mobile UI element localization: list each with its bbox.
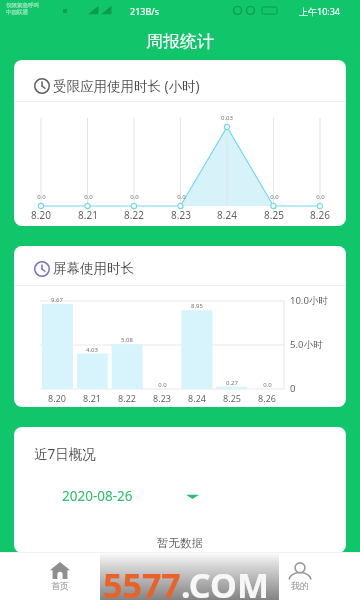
staticText: 5.0小时 (290, 338, 323, 351)
staticText: 0.0 (37, 193, 46, 201)
staticText: 0.0 (316, 193, 325, 201)
staticText: 8.23 (171, 208, 191, 222)
staticText: 8.24 (188, 392, 206, 404)
staticText: 8.26 (258, 392, 276, 404)
staticText: 8.21 (83, 392, 101, 404)
staticText: 受限应用使用时长 (小时) (53, 77, 200, 95)
staticText: 9.67 (51, 296, 63, 304)
staticText: 2020-08-26 (62, 487, 133, 505)
staticText: 0 (290, 382, 296, 395)
button[interactable]: Profile (240, 553, 360, 600)
staticText: 0.27 (226, 379, 238, 387)
staticText: 8.95 (191, 302, 203, 310)
staticText: 0.0 (84, 193, 93, 201)
staticText: 上午10:34 (299, 5, 341, 17)
staticText: 8.26 (310, 208, 330, 222)
staticText: 8.21 (78, 208, 98, 222)
staticText: 8.22 (124, 208, 144, 222)
staticText: 0.0 (130, 193, 139, 201)
button[interactable]: Statistics (120, 553, 240, 600)
staticText: 8.22 (118, 392, 136, 404)
staticText: 中国联通 (6, 9, 28, 16)
staticText: 0.0 (158, 381, 167, 389)
staticText: 0.03 (221, 114, 233, 122)
staticText: 统计 (171, 581, 189, 592)
staticText: 10.0小时 (290, 294, 328, 307)
staticText: 暂无数据 (14, 536, 346, 550)
staticText: 近7日概况 (34, 445, 96, 463)
staticText: 0.0 (263, 381, 272, 389)
button[interactable]: 2020-08-26 (62, 485, 222, 507)
staticText: 0.0 (270, 193, 279, 201)
staticText: 屏幕使用时长 (53, 260, 134, 277)
staticText: 8.24 (217, 208, 237, 222)
staticText: 8.25 (264, 208, 284, 222)
staticText: 213B/s (130, 5, 159, 17)
staticText: 我的 (291, 580, 309, 591)
staticText: 仅限紧急呼叫 (6, 2, 39, 9)
staticText: 周报统计 (146, 31, 214, 52)
staticText: 首页 (51, 580, 69, 591)
staticText: 8.20 (48, 392, 66, 404)
staticText: 5577 (103, 562, 181, 600)
staticText: 5.08 (121, 336, 133, 344)
staticText: 8.23 (153, 392, 171, 404)
staticText: 0.0 (177, 193, 186, 201)
button[interactable]: Home (0, 553, 120, 600)
staticText: .COM (181, 562, 269, 600)
staticText: 4.03 (86, 346, 98, 354)
staticText: 8.20 (31, 208, 51, 222)
staticText: 8.25 (223, 392, 241, 404)
